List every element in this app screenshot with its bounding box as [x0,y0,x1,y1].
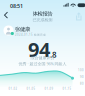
staticText: 01-02 [8,87,17,90]
staticText: 01-15 [62,87,71,90]
staticText: 08:51 [10,2,23,10]
button[interactable]: Back [1,9,11,21]
staticText: 已完成检测 [32,17,52,22]
staticText: 80 [80,82,84,85]
staticText: 综合健康评分 [30,55,54,60]
staticText: 2024-01-15 检测完成 [15,33,46,37]
staticText: 100 [78,68,84,72]
staticText: 01-09 [44,87,53,90]
staticText: 优秀 · 超过全国 96% 同龄人 [18,61,66,66]
staticText: 张健康 [15,26,30,33]
staticText: 体检报告 [32,10,52,17]
staticText: .8 [50,49,57,60]
button[interactable]: Share [74,10,85,22]
staticText: 01-05 [26,87,35,90]
staticText: 94 [28,36,50,63]
staticText: 90 [80,75,84,79]
